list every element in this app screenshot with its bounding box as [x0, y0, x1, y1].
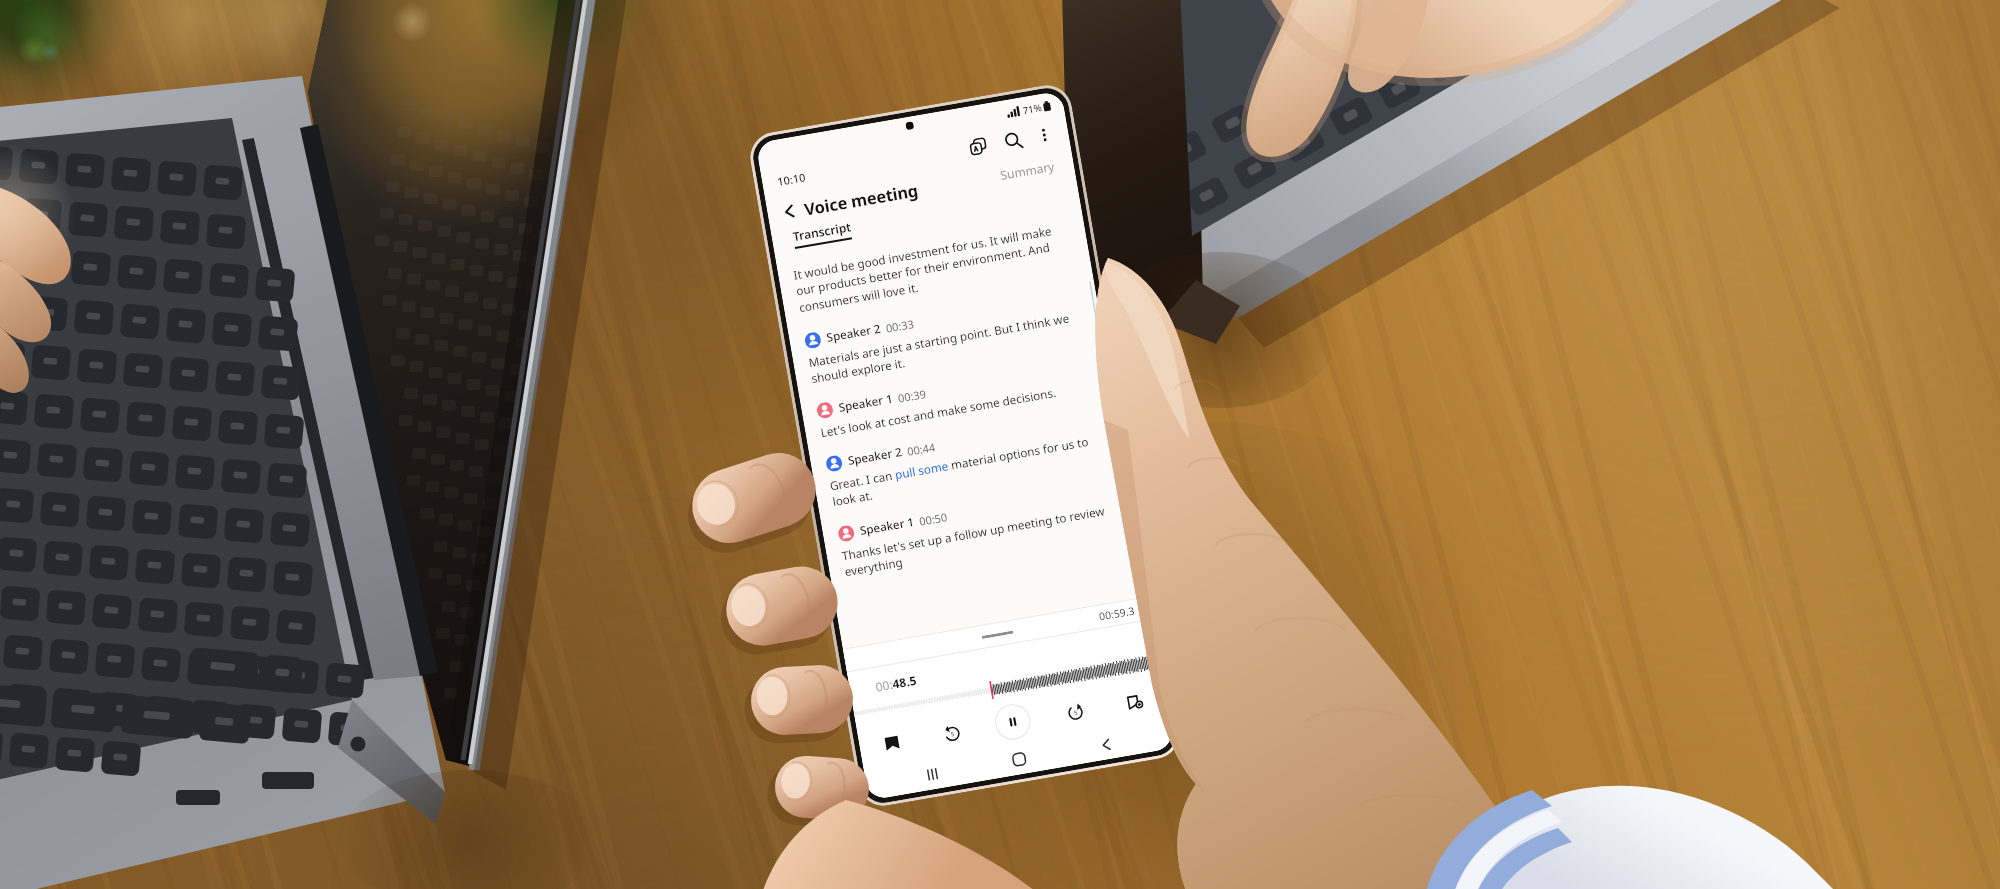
button[interactable]: Bookmark [873, 724, 910, 761]
staticText: 00: [874, 676, 894, 695]
button[interactable]: Speaker 2 [804, 286, 1090, 387]
staticText: 10:10 [776, 169, 807, 189]
button[interactable]: Speaker 1 [837, 479, 1123, 580]
staticText: 00:44 [906, 439, 937, 459]
staticText: Speaker 1 [859, 514, 916, 539]
button[interactable]: Home [997, 741, 1041, 778]
button[interactable]: Back [775, 196, 805, 226]
button[interactable]: Pause [992, 701, 1033, 743]
staticText: Thanks let's set up a follow up meeting … [841, 500, 1123, 580]
staticText: Speaker 1 [837, 391, 894, 416]
button[interactable]: Forward 5 seconds [1056, 693, 1093, 730]
button[interactable]: Search [997, 124, 1029, 157]
button[interactable]: Speaker 2 [825, 409, 1111, 510]
button[interactable]: Add note [1115, 682, 1152, 719]
button[interactable]: Transcript [791, 218, 853, 249]
staticText: It would be good investment for us. It w… [792, 219, 1077, 316]
button[interactable]: More options [1029, 120, 1059, 150]
staticText: 5 [950, 730, 956, 739]
staticText: Voice meeting [802, 178, 920, 220]
staticText: Speaker 2 [825, 321, 882, 346]
staticText: 00:39 [897, 386, 928, 406]
staticText: 00:59.3 [1098, 604, 1136, 623]
button[interactable]: Summary [995, 151, 1060, 189]
button[interactable]: Speaker 1 [816, 356, 1099, 440]
staticText: Summary [999, 158, 1056, 183]
button[interactable]: Recents [911, 756, 956, 792]
staticText: Let's look at cost and make some decisio… [819, 384, 1057, 440]
staticText: 00:50 [918, 509, 949, 529]
staticText: Materials are just a starting point. But… [807, 307, 1090, 387]
staticText: Transcript [791, 218, 852, 244]
staticText: Great. I can pull some material options … [828, 430, 1111, 510]
staticText: 00:33 [885, 316, 916, 336]
button[interactable]: Translate [962, 130, 994, 163]
staticText: 71% [1022, 101, 1043, 117]
button[interactable]: Back [1084, 726, 1128, 763]
staticText: 5 [1073, 709, 1079, 717]
staticText: 48.5 [891, 672, 917, 692]
staticText: Speaker 2 [847, 444, 903, 469]
button[interactable]: Rewind 5 seconds [933, 714, 970, 751]
